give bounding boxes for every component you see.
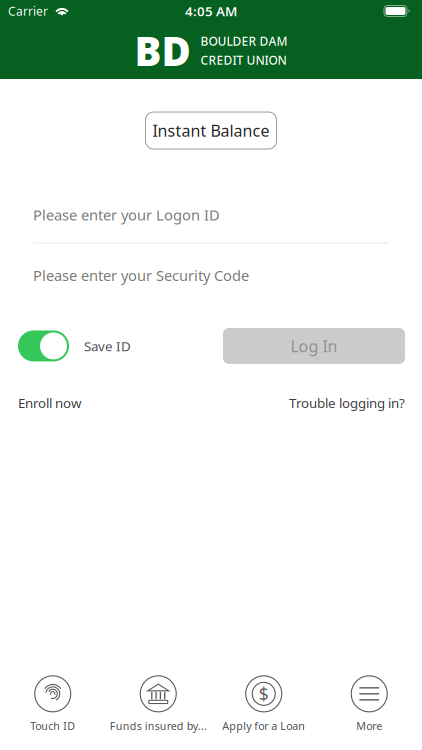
staticText: Apply for a Loan [222, 719, 305, 733]
button[interactable]: $ [211, 664, 316, 750]
button[interactable]: Funds insured by... [105, 664, 211, 750]
staticText: Instant Balance [152, 120, 269, 141]
button[interactable]: Save ID [18, 330, 131, 361]
staticText: Please enter your Logon ID [33, 205, 220, 224]
staticText: Touch ID [30, 719, 75, 733]
staticText: More [356, 719, 382, 733]
staticText: Carrier [8, 3, 48, 19]
staticText: Trouble logging in? [289, 394, 405, 412]
staticText: CREDIT UNION [200, 52, 286, 68]
button[interactable]: Touch ID [0, 664, 105, 750]
staticText: Log In [290, 335, 337, 356]
button[interactable]: More [316, 664, 422, 750]
staticText: Please enter your Security Code [33, 265, 249, 285]
staticText: Enroll now [18, 394, 81, 412]
button[interactable]: Trouble logging in? [289, 394, 405, 412]
staticText: Funds insured by... [110, 719, 207, 733]
staticText: Save ID [84, 337, 131, 355]
staticText: BOULDER DAM [200, 33, 287, 49]
button[interactable]: Log In [223, 328, 405, 364]
button[interactable]: Enroll now [18, 394, 81, 412]
staticText: 4:05 AM [185, 2, 237, 20]
staticText: BD [134, 24, 190, 77]
button[interactable]: Instant Balance [145, 112, 276, 149]
staticText: $ [259, 682, 269, 705]
